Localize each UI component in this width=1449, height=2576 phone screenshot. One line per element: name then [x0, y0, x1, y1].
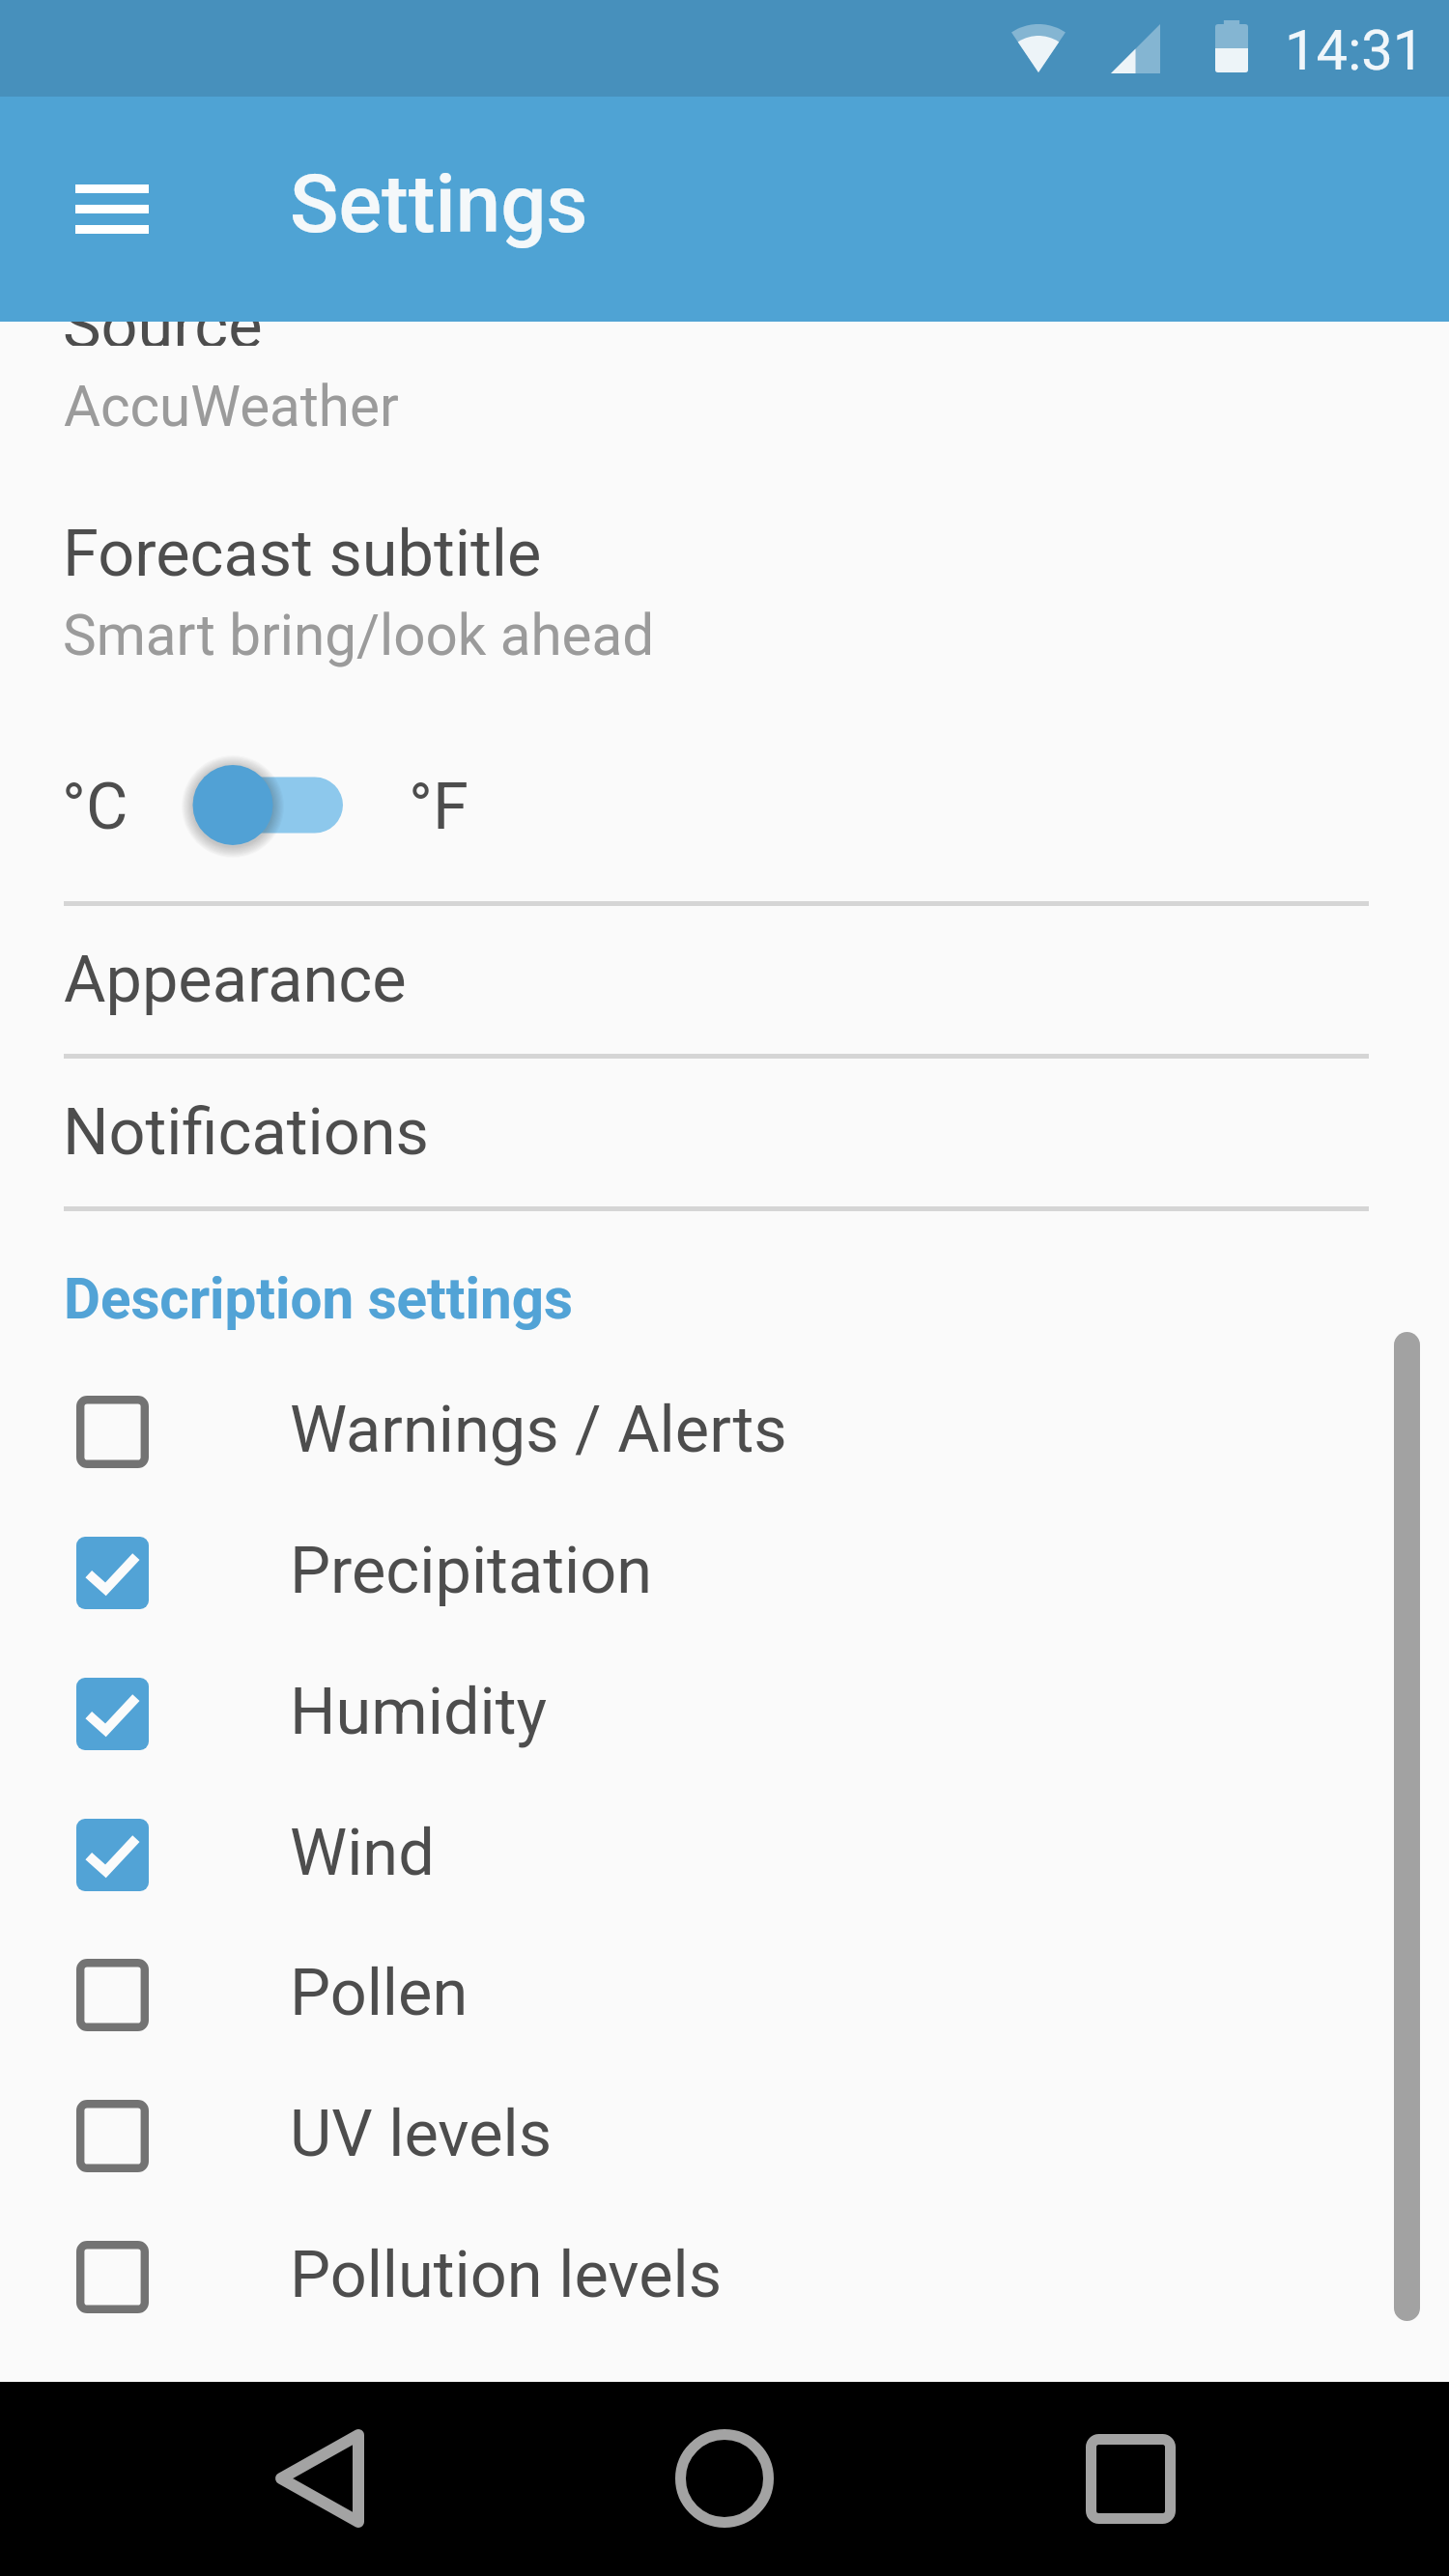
staticText: Smart bring/look ahead: [63, 603, 655, 668]
button[interactable]: Appearance: [0, 903, 1449, 1056]
button[interactable]: Open navigation menu: [56, 153, 168, 265]
staticText: AccuWeather: [64, 374, 399, 439]
staticText: Warnings / Alerts: [290, 1392, 787, 1467]
button[interactable]: Warnings / Alerts: [0, 1362, 1449, 1503]
button[interactable]: Forecast subtitle: [0, 488, 1449, 681]
staticText: 14:31: [1285, 17, 1425, 83]
staticText: Forecast subtitle: [63, 516, 542, 591]
button[interactable]: Home: [667, 2420, 782, 2536]
staticText: Settings: [290, 157, 588, 252]
staticText: Wind: [290, 1815, 435, 1890]
button[interactable]: Recent apps: [1072, 2420, 1188, 2536]
staticText: Humidity: [290, 1674, 548, 1749]
button[interactable]: Back: [262, 2420, 378, 2536]
staticText: Appearance: [64, 942, 407, 1017]
staticText: Notifications: [63, 1094, 429, 1170]
button[interactable]: UV levels: [0, 2066, 1449, 2207]
staticText: °C: [62, 769, 128, 844]
button[interactable]: Precipitation: [0, 1503, 1449, 1644]
button[interactable]: Humidity: [0, 1644, 1449, 1785]
staticText: Description settings: [64, 1266, 574, 1332]
button[interactable]: AccuWeather: [0, 322, 1449, 454]
staticText: Precipitation: [290, 1533, 653, 1608]
button[interactable]: Temperature unit, Celsius selected: [180, 744, 363, 867]
button[interactable]: Wind: [0, 1785, 1449, 1926]
staticText: °F: [409, 769, 469, 844]
button[interactable]: Pollen: [0, 1925, 1449, 2066]
button[interactable]: Pollution levels: [0, 2207, 1449, 2348]
staticText: UV levels: [290, 2096, 553, 2171]
staticText: Pollution levels: [290, 2237, 723, 2312]
staticText: Pollen: [290, 1955, 469, 2030]
button[interactable]: Notifications: [0, 1056, 1449, 1208]
staticText: Source: [63, 322, 263, 346]
